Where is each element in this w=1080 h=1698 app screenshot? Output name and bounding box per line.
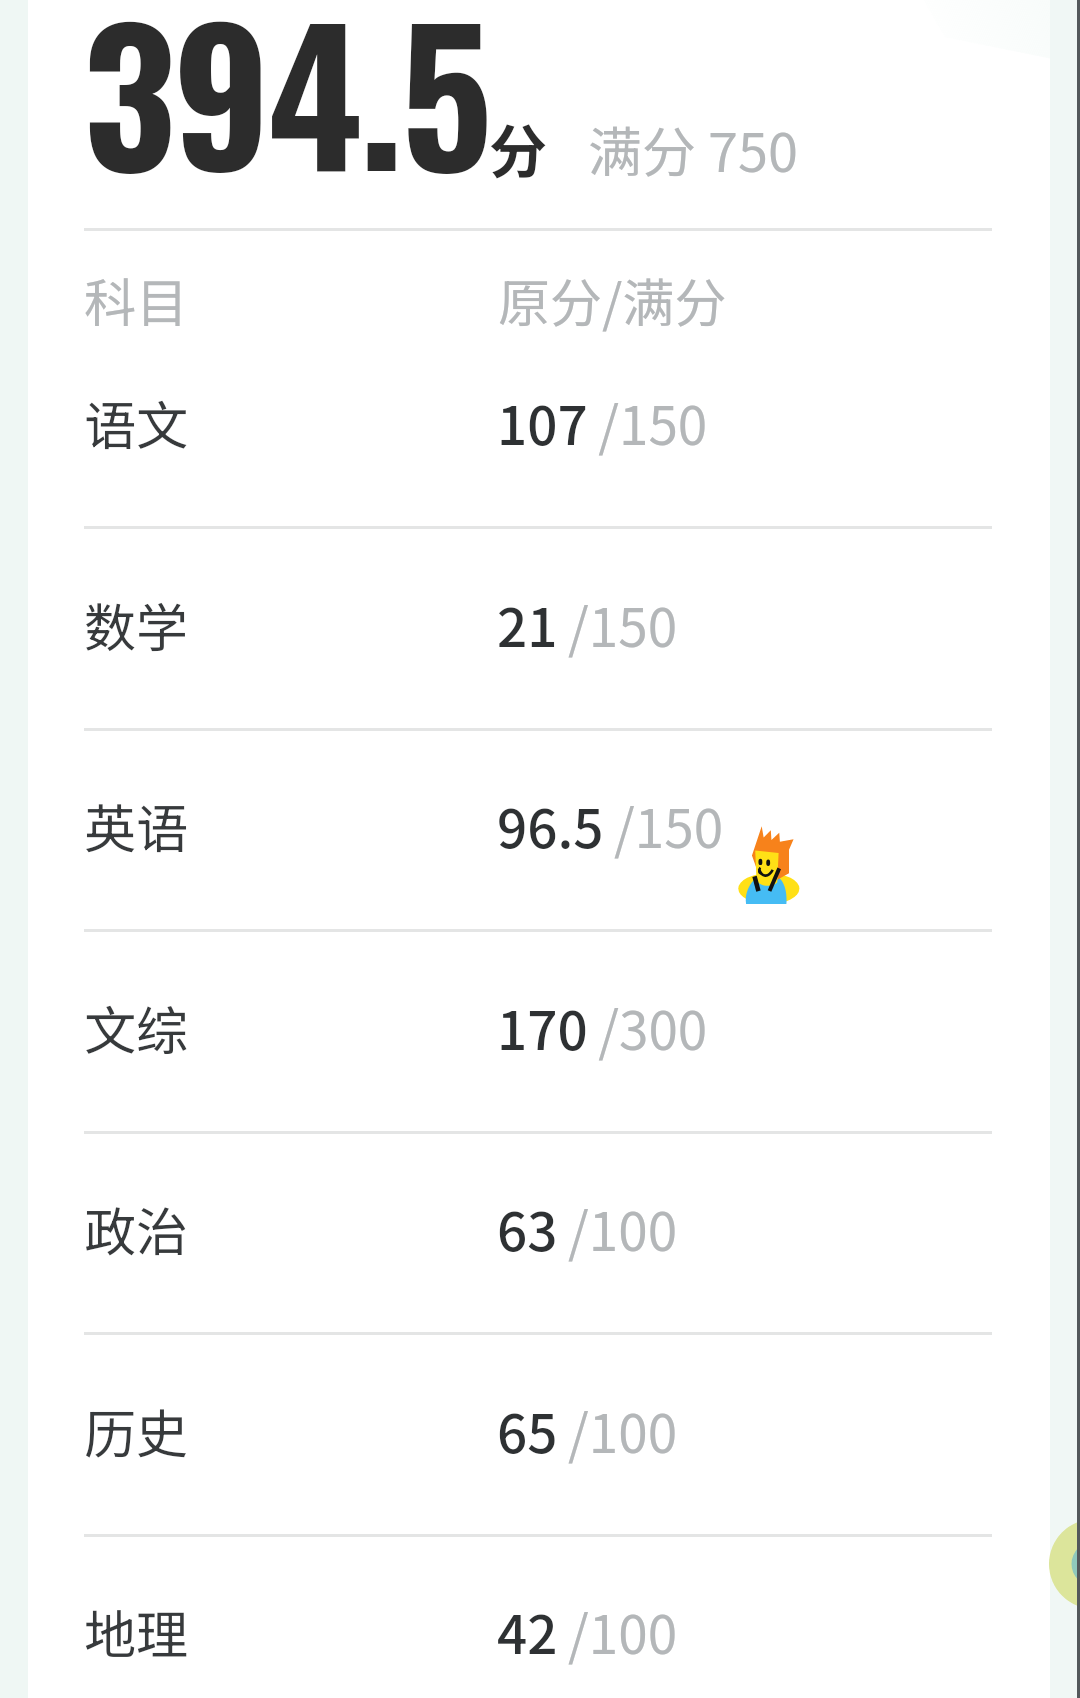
staticText: 170 /300 — [497, 989, 708, 1066]
button[interactable]: 语文 — [84, 327, 992, 528]
staticText: 42 /100 — [497, 1593, 678, 1670]
staticText: 63 /100 — [497, 1190, 678, 1267]
staticText: 历史 — [84, 1393, 189, 1468]
staticText: 21 /150 — [497, 586, 678, 663]
staticText: 文综 — [84, 990, 189, 1065]
button[interactable]: 文综 — [84, 932, 992, 1133]
button[interactable]: Sticker — [737, 823, 802, 904]
staticText: 65 /100 — [497, 1392, 678, 1469]
button[interactable]: Badge — [1049, 1519, 1080, 1609]
staticText: 394.5 — [83, 0, 490, 223]
button[interactable]: 数学 — [84, 529, 992, 730]
staticText: 原分/满分 — [498, 262, 727, 337]
staticText: 英语 — [84, 788, 189, 863]
staticText: 语文 — [84, 385, 189, 460]
staticText: 分 — [489, 106, 548, 190]
staticText: 科目 — [84, 262, 189, 337]
button[interactable]: 政治 — [84, 1133, 992, 1334]
staticText: 地理 — [84, 1594, 189, 1669]
button[interactable]: 英语 — [84, 730, 992, 931]
staticText: 满分 750 — [588, 109, 799, 187]
staticText: 107 /150 — [497, 384, 708, 461]
staticText: 政治 — [84, 1191, 189, 1266]
button[interactable]: 地理 — [84, 1536, 992, 1698]
button[interactable]: 历史 — [84, 1335, 992, 1536]
staticText: 96.5 /150 — [497, 787, 724, 864]
staticText: 数学 — [84, 587, 189, 662]
